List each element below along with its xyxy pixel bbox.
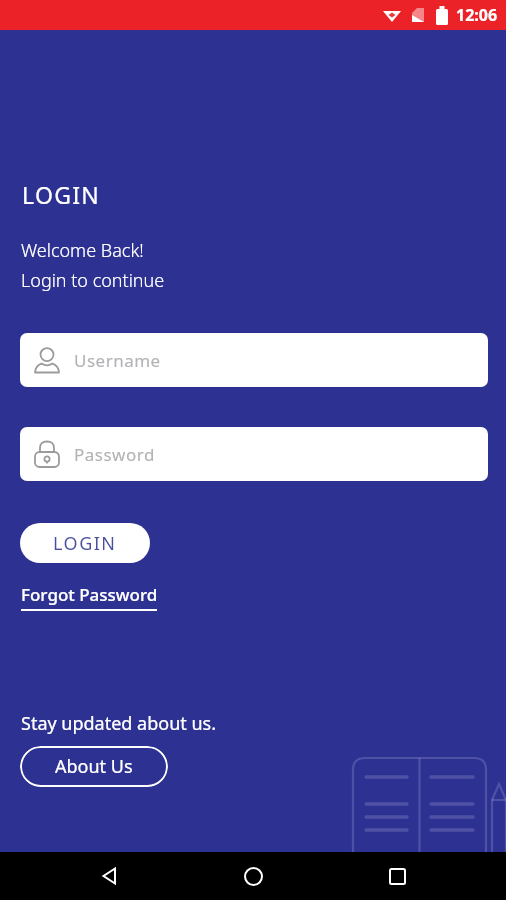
staticText: LOGIN (53, 531, 117, 556)
staticText: 12:06 (456, 4, 498, 26)
staticText: Forgot Password (21, 583, 158, 606)
button[interactable]: Password (20, 427, 488, 481)
button[interactable]: About Us (20, 746, 168, 787)
staticText: About Us (55, 754, 133, 779)
staticText: LOGIN (22, 179, 101, 210)
button[interactable] (85, 852, 133, 900)
button[interactable] (229, 852, 277, 900)
staticText: Password (74, 443, 155, 466)
staticText: Username (74, 349, 161, 372)
button[interactable] (373, 852, 421, 900)
staticText: Login to continue (21, 268, 165, 293)
staticText: Stay updated about us. (21, 711, 217, 736)
button[interactable]: LOGIN (20, 523, 150, 563)
button[interactable]: Forgot Password (21, 583, 158, 611)
button[interactable]: Username (20, 333, 488, 387)
staticText: Welcome Back! (21, 238, 144, 263)
